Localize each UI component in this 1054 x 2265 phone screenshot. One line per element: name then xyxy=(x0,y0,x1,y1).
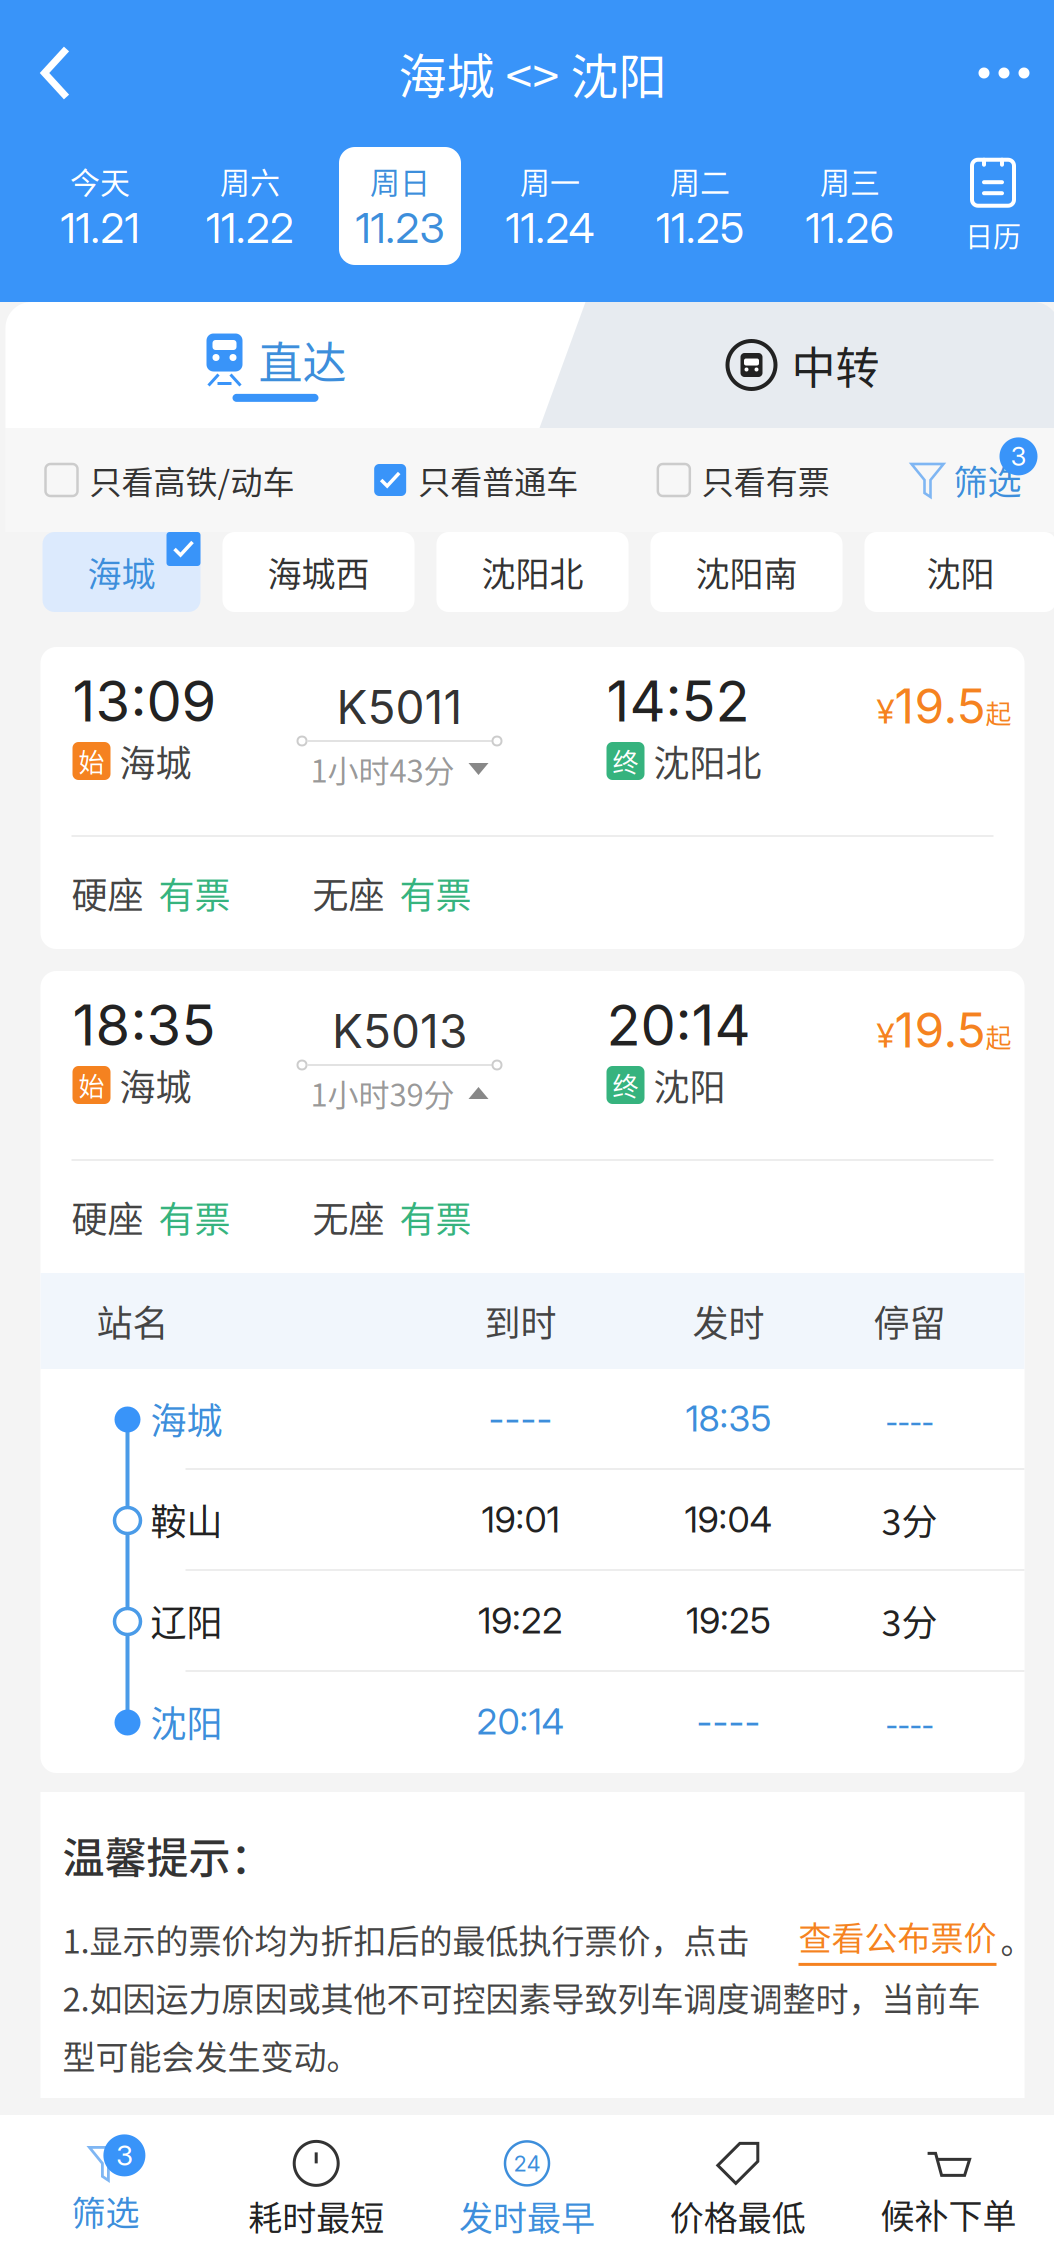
staticText: 发时 xyxy=(692,1295,764,1347)
staticText: 海城 xyxy=(119,735,191,787)
staticText: 19:22 xyxy=(478,1599,563,1642)
staticText: 站名 xyxy=(96,1295,168,1347)
button[interactable]: 周二 xyxy=(625,147,775,265)
staticText: ---- xyxy=(885,1392,933,1444)
staticText: 查看公布票价 xyxy=(798,1912,996,1960)
staticText: 只看有票 xyxy=(702,457,830,503)
button[interactable]: 沈阳北 xyxy=(436,532,628,612)
staticText: 周日 xyxy=(370,159,430,202)
staticText: 海城西 xyxy=(267,547,369,597)
staticText: 起 xyxy=(985,693,1011,731)
button[interactable]: 只看有票 xyxy=(658,457,830,503)
staticText: 18:35 xyxy=(72,991,215,1059)
button[interactable]: 价格最低 xyxy=(632,2115,843,2265)
staticText: 始 xyxy=(78,742,104,780)
staticText: 19.5 xyxy=(894,677,985,735)
staticText: 沈阳 xyxy=(653,1059,725,1111)
button[interactable]: 中转 xyxy=(545,302,1054,428)
staticText: 11.22 xyxy=(206,202,294,253)
staticText: 耗时最短 xyxy=(248,2191,384,2241)
button[interactable]: More xyxy=(948,27,1054,118)
button[interactable]: 只看高铁/动车 xyxy=(5,457,294,503)
staticText: 19.5 xyxy=(894,1001,985,1059)
button[interactable]: 耗时最短 xyxy=(211,2115,422,2265)
staticText: ---- xyxy=(885,1695,933,1747)
button[interactable]: 海城 xyxy=(42,532,200,612)
staticText: K5013 xyxy=(332,1003,467,1059)
button[interactable]: 周六 xyxy=(175,147,325,265)
staticText: 鞍山 xyxy=(150,1493,222,1545)
staticText: 有票 xyxy=(399,1191,471,1243)
staticText: 有票 xyxy=(158,1191,230,1243)
staticText: 11.21 xyxy=(60,202,139,253)
button[interactable]: 日历 xyxy=(933,148,1053,264)
staticText: 沈阳北 xyxy=(481,547,583,597)
staticText: 18:35 xyxy=(685,1397,771,1440)
staticText: 3分 xyxy=(881,1493,937,1545)
button[interactable]: 筛选 xyxy=(909,455,1054,505)
staticText: 1小时39分 xyxy=(310,1071,454,1115)
staticText: 1小时43分 xyxy=(310,747,454,791)
button[interactable]: 3 xyxy=(0,2115,211,2265)
staticText: 终 xyxy=(612,742,638,780)
staticText: 11.25 xyxy=(656,202,744,253)
staticText: 周六 xyxy=(220,159,280,202)
staticText: 有票 xyxy=(158,867,230,919)
staticText: 20:14 xyxy=(606,991,750,1059)
staticText: 海城 xyxy=(150,1392,222,1444)
staticText: 周一 xyxy=(520,159,580,202)
staticText: 沈阳 xyxy=(926,547,994,597)
staticText: 型可能会发生变动。 xyxy=(62,2031,359,2079)
button[interactable]: 沈阳南 xyxy=(650,532,842,612)
button[interactable]: 今天 xyxy=(25,147,175,265)
staticText: 周三 xyxy=(820,159,880,202)
staticText: 直达 xyxy=(258,328,346,392)
staticText: 沈阳 xyxy=(150,1695,222,1747)
staticText: 海城 <> 沈阳 xyxy=(398,38,666,108)
staticText: 3 xyxy=(116,2138,133,2172)
staticText: 19:01 xyxy=(481,1498,559,1541)
staticText: ---- xyxy=(488,1397,552,1440)
staticText: ¥ xyxy=(876,690,894,732)
staticText: 。 xyxy=(1000,1915,1033,1963)
staticText: 14:52 xyxy=(606,667,749,735)
staticText: 终 xyxy=(612,1066,638,1104)
button[interactable]: 周日 xyxy=(325,147,475,265)
staticText: 19:04 xyxy=(684,1498,772,1541)
staticText: 无座 xyxy=(312,867,384,919)
staticText: 沈阳南 xyxy=(695,547,797,597)
staticText: 19:25 xyxy=(686,1599,771,1642)
staticText: 11.24 xyxy=(505,202,594,253)
staticText: 11.26 xyxy=(805,202,894,253)
button[interactable]: 直达 xyxy=(5,302,545,428)
staticText: 始 xyxy=(78,1066,104,1104)
button[interactable]: 24 xyxy=(422,2115,632,2265)
staticText: 停留 xyxy=(873,1295,945,1347)
staticText: 海城 xyxy=(119,1059,191,1111)
staticText: 13:09 xyxy=(72,667,216,735)
button[interactable]: 海城西 xyxy=(222,532,414,612)
button[interactable]: 沈阳 xyxy=(864,532,1054,612)
staticText: 2.如因运力原因或其他不可控因素导致列车调度调整时，当前车 xyxy=(62,1973,980,2021)
button[interactable]: 候补下单 xyxy=(843,2115,1054,2265)
staticText: 温馨提示： xyxy=(62,1825,272,1885)
staticText: 沈阳北 xyxy=(653,735,761,787)
staticText: 只看普通车 xyxy=(418,457,578,503)
button[interactable]: 周三 xyxy=(775,147,925,265)
staticText: 海城 xyxy=(87,547,155,597)
button[interactable]: 只看普通车 xyxy=(374,457,578,503)
staticText: 有票 xyxy=(399,867,471,919)
staticText: 日历 xyxy=(965,215,1021,255)
button[interactable]: Back xyxy=(5,19,105,127)
staticText: 到时 xyxy=(484,1295,556,1347)
staticText: 发时最早 xyxy=(459,2191,595,2241)
staticText: ¥ xyxy=(876,1014,894,1056)
staticText: 筛选 xyxy=(953,455,1021,505)
staticText: 今天 xyxy=(70,159,130,202)
staticText: 20:14 xyxy=(476,1700,564,1743)
staticText: 硬座 xyxy=(71,1191,143,1243)
staticText: 周二 xyxy=(670,159,730,202)
staticText: 起 xyxy=(985,1017,1011,1055)
button[interactable]: 周一 xyxy=(475,147,625,265)
staticText: 筛选 xyxy=(71,2186,139,2236)
